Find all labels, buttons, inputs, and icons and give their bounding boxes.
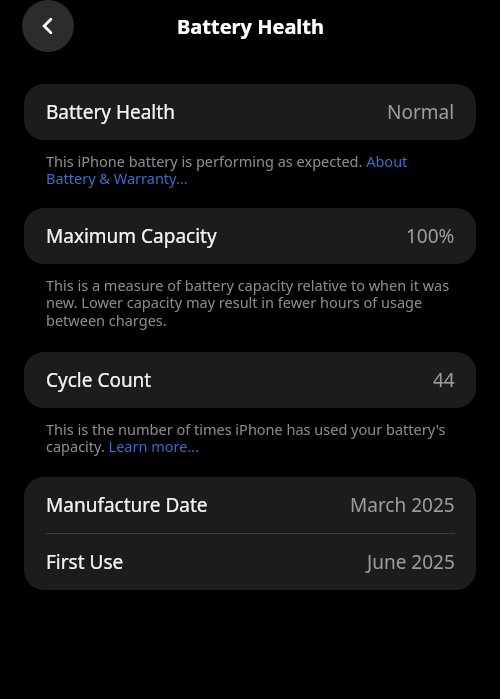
staticText: 100% (406, 223, 455, 249)
button[interactable]: Manufacture Date (24, 477, 476, 533)
staticText: Maximum Capacity (46, 223, 217, 249)
staticText: This is a measure of battery capacity re… (46, 275, 456, 330)
button[interactable]: Cycle Count (24, 352, 476, 408)
staticText: This is the number of times iPhone has u… (46, 419, 456, 456)
button[interactable]: Battery Health (24, 84, 476, 140)
button[interactable]: Maximum Capacity (24, 208, 476, 264)
staticText: First Use (46, 549, 124, 575)
button[interactable]: First Use (24, 534, 476, 590)
staticText: This iPhone battery is performing as exp… (46, 151, 456, 188)
staticText: Normal (387, 99, 455, 125)
button[interactable]: Back (22, 0, 74, 52)
staticText: Cycle Count (46, 367, 152, 393)
staticText: June 2025 (367, 549, 455, 575)
staticText: Battery Health (177, 13, 324, 40)
staticText: Battery Health (46, 99, 175, 125)
staticText: Manufacture Date (46, 492, 208, 518)
staticText: March 2025 (350, 492, 455, 518)
staticText: 44 (433, 367, 455, 393)
